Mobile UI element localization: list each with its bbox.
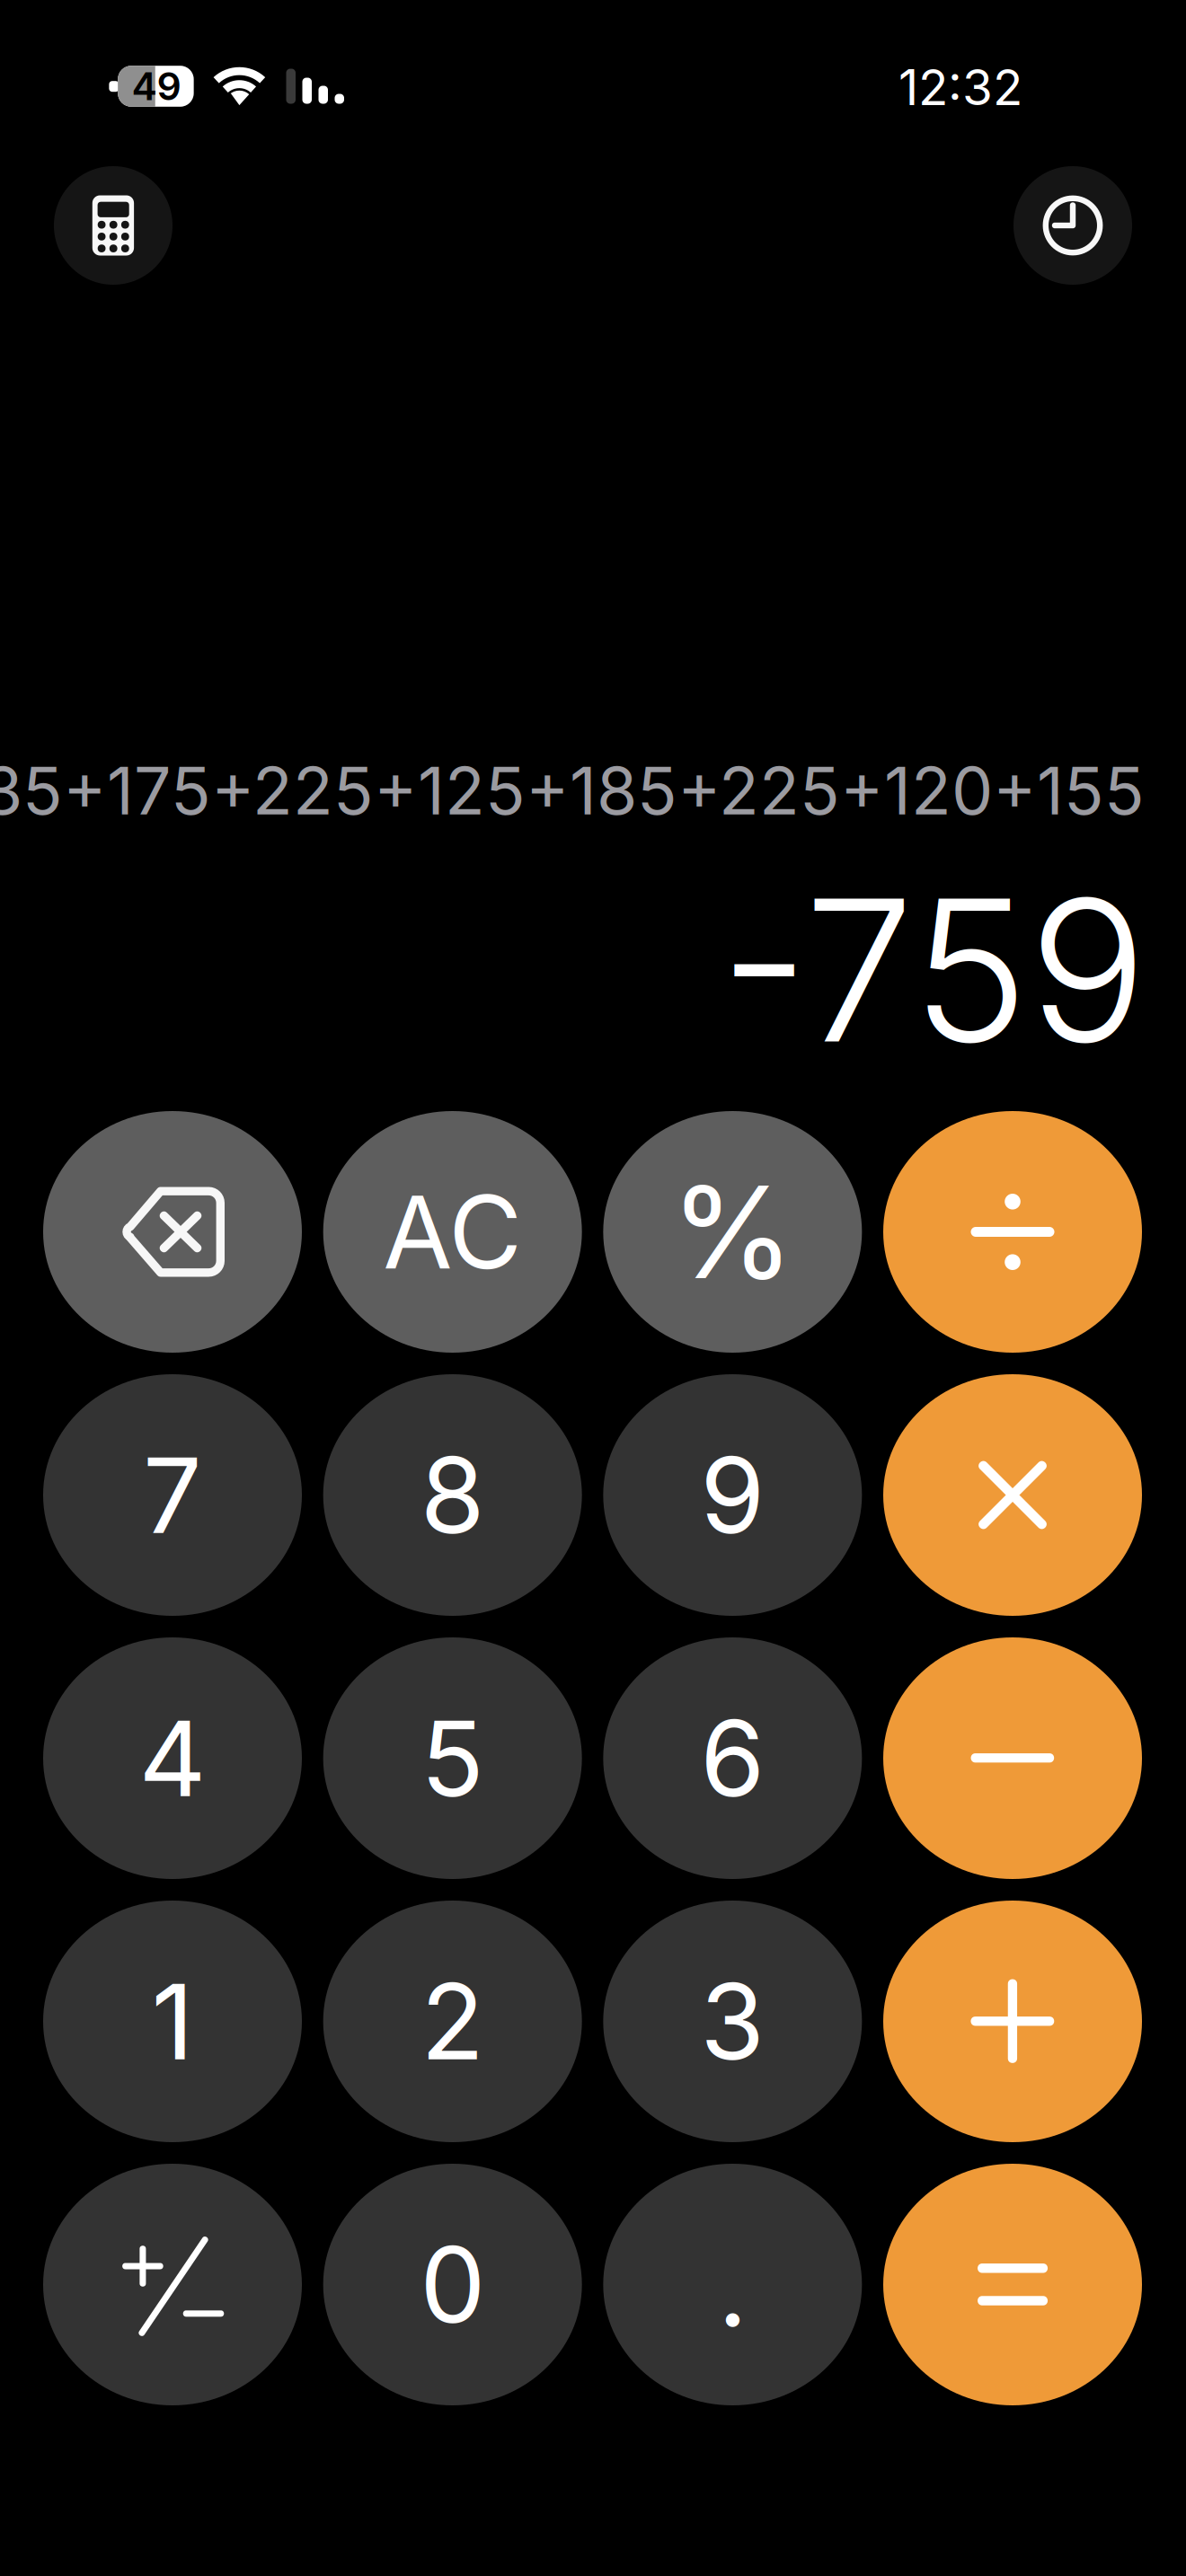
button[interactable]: .	[603, 2164, 862, 2405]
staticText: 4	[139, 1695, 206, 1821]
staticText: 35+175+225+125+185+225+120+155	[0, 751, 1145, 830]
button[interactable]: Divide	[883, 1111, 1142, 1353]
staticText: 12:32	[898, 57, 1022, 117]
button[interactable]: 2	[323, 1901, 582, 2142]
staticText: 49	[132, 63, 181, 109]
button[interactable]: 0	[323, 2164, 582, 2405]
button[interactable]: 7	[43, 1374, 302, 1616]
button[interactable]: Multiply	[883, 1374, 1142, 1616]
button[interactable]: 4	[43, 1637, 302, 1879]
button[interactable]: 8	[323, 1374, 582, 1616]
button[interactable]: Equals	[883, 2164, 1142, 2405]
button[interactable]: Minus	[883, 1637, 1142, 1879]
button[interactable]: %	[603, 1111, 862, 1353]
button[interactable]: Backspace	[43, 1111, 302, 1353]
button[interactable]: Plus minus	[43, 2164, 302, 2405]
staticText: 3	[700, 1958, 765, 2084]
button[interactable]: 3	[603, 1901, 862, 2142]
staticText: %	[670, 1155, 795, 1309]
button[interactable]: Plus	[883, 1901, 1142, 2142]
staticText: -759	[720, 851, 1147, 1089]
staticText: 1	[151, 1958, 194, 2084]
staticText: 2	[421, 1958, 484, 2084]
staticText: 8	[420, 1432, 485, 1558]
button[interactable]: History	[1013, 166, 1132, 285]
button[interactable]: AC	[323, 1111, 582, 1353]
button[interactable]: Calculator	[54, 166, 173, 285]
button[interactable]: 1	[43, 1901, 302, 2142]
staticText: AC	[383, 1171, 522, 1293]
staticText: 9	[700, 1432, 765, 1558]
button[interactable]: 5	[323, 1637, 582, 1879]
staticText: 6	[700, 1695, 765, 1821]
staticText: 0	[420, 2221, 485, 2348]
staticText: 7	[143, 1432, 202, 1558]
button[interactable]: 9	[603, 1374, 862, 1616]
button[interactable]: 6	[603, 1637, 862, 1879]
staticText: 5	[421, 1695, 484, 1821]
staticText: .	[718, 2225, 747, 2351]
